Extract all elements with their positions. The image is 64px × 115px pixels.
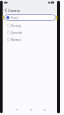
staticText: Camera bbox=[8, 9, 20, 13]
button[interactable]: On only bbox=[4, 22, 56, 29]
button[interactable]: Normal bbox=[4, 36, 56, 43]
button[interactable] bbox=[41, 106, 49, 114]
button[interactable] bbox=[27, 106, 35, 114]
button[interactable]: Override bbox=[4, 29, 56, 36]
button[interactable] bbox=[13, 106, 21, 114]
staticText: On only bbox=[11, 24, 21, 28]
button[interactable] bbox=[3, 7, 9, 13]
staticText: Front bbox=[11, 16, 18, 20]
staticText: Normal bbox=[11, 38, 21, 42]
button[interactable]: Front bbox=[4, 14, 56, 21]
staticText: Override bbox=[11, 31, 23, 35]
